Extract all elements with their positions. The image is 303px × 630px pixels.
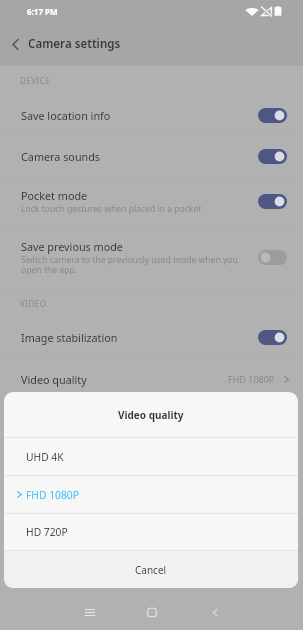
- staticText: VIDEO: [20, 298, 47, 309]
- staticText: Video quality: [118, 408, 184, 422]
- button[interactable]: Image stabilization: [0, 317, 303, 358]
- staticText: Pocket mode: [21, 188, 88, 203]
- staticText: Switch camera to the previously used mod…: [21, 254, 238, 276]
- staticText: HD 720P: [26, 525, 68, 539]
- button[interactable]: FHD 1080P: [4, 476, 298, 513]
- button[interactable]: Save location info: [0, 95, 303, 135]
- staticText: Camera settings: [28, 36, 121, 52]
- button[interactable]: Save previous mode: [0, 227, 303, 288]
- button[interactable]: Home: [134, 594, 170, 630]
- button[interactable]: UHD 4K: [4, 438, 298, 475]
- button[interactable]: Camera sounds: [0, 136, 303, 176]
- button[interactable]: Video quality: [0, 359, 303, 399]
- staticText: FHD 1080P: [228, 373, 275, 385]
- staticText: UHD 4K: [26, 450, 64, 464]
- button[interactable]: Back: [197, 594, 233, 630]
- staticText: Camera sounds: [21, 149, 101, 164]
- staticText: Image stabilization: [21, 330, 118, 345]
- staticText: 6:17 PM: [27, 6, 58, 17]
- staticText: Lock touch gestures when placed in a poc…: [21, 203, 202, 215]
- button[interactable]: Pocket mode: [0, 177, 303, 226]
- staticText: FHD 1080P: [26, 488, 79, 502]
- staticText: Cancel: [135, 563, 167, 577]
- button[interactable]: Cancel: [4, 551, 298, 588]
- button[interactable]: Recent apps: [72, 594, 108, 630]
- staticText: Save previous mode: [21, 239, 123, 254]
- staticText: Save location info: [21, 108, 111, 123]
- staticText: Video quality: [21, 372, 87, 387]
- button[interactable]: Back: [0, 22, 30, 66]
- button[interactable]: HD 720P: [4, 514, 298, 550]
- staticText: DEVICE: [20, 75, 51, 86]
